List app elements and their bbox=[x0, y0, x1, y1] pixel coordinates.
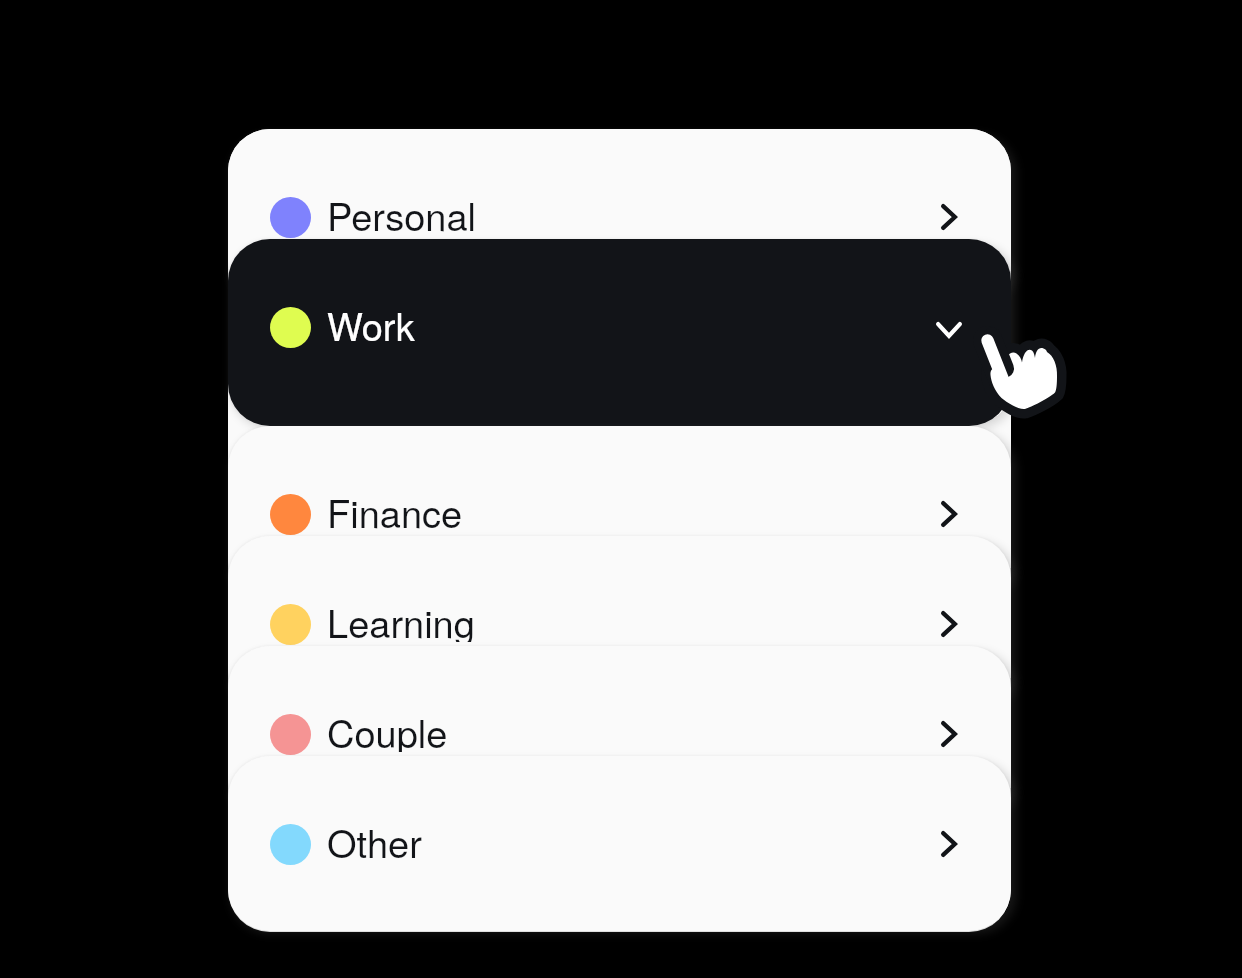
staticText: Couple bbox=[327, 704, 448, 752]
button[interactable]: Couple bbox=[228, 646, 1011, 821]
button[interactable]: Open Learning bbox=[925, 600, 973, 648]
staticText: Learning bbox=[327, 594, 475, 642]
staticText: Other bbox=[327, 814, 422, 862]
button[interactable]: Open Finance bbox=[925, 490, 973, 538]
staticText: Work bbox=[327, 297, 415, 345]
staticText: Personal bbox=[327, 187, 476, 235]
button[interactable]: Personal bbox=[228, 129, 1011, 304]
button[interactable]: Open Personal bbox=[925, 193, 973, 241]
button[interactable]: Open Other bbox=[925, 820, 973, 868]
button[interactable]: Open Couple bbox=[925, 710, 973, 758]
other: Pointer bbox=[978, 332, 1078, 432]
button[interactable]: Work bbox=[228, 239, 1011, 426]
staticText: Finance bbox=[327, 484, 463, 532]
button[interactable]: Other bbox=[228, 756, 1011, 931]
button[interactable]: Learning bbox=[228, 536, 1011, 711]
button[interactable]: Finance bbox=[228, 426, 1011, 601]
button[interactable]: Collapse Work bbox=[925, 303, 973, 351]
